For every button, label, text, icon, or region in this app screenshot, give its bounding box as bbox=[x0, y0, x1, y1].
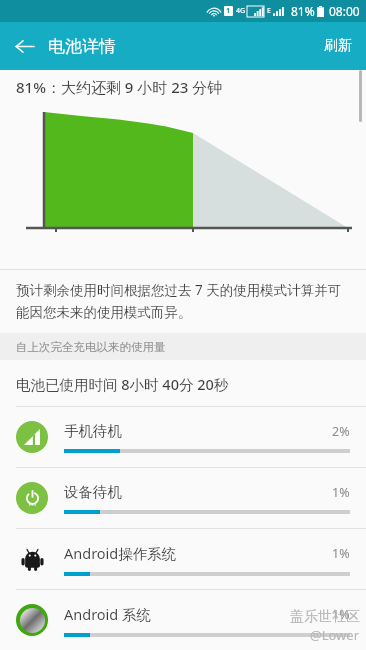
button[interactable]: 手机待机 bbox=[0, 406, 366, 467]
staticText: 刷新 bbox=[324, 37, 352, 55]
staticText: Android操作系统 bbox=[64, 543, 332, 563]
staticText: 盖乐世社区 bbox=[290, 608, 360, 626]
button[interactable]: Android 系统 bbox=[0, 589, 366, 650]
staticText: 设备待机 bbox=[64, 483, 332, 501]
staticText: E bbox=[267, 6, 271, 16]
button[interactable]: 设备待机 bbox=[0, 467, 366, 528]
staticText: 电池详情 bbox=[48, 36, 116, 57]
button[interactable]: 刷新 bbox=[310, 25, 366, 67]
staticText: 1% bbox=[332, 545, 350, 562]
staticText: 1% bbox=[332, 606, 350, 623]
staticText: 4G bbox=[236, 6, 246, 16]
staticText: 08:00 bbox=[329, 3, 360, 19]
staticText: @Lower bbox=[310, 626, 360, 644]
staticText: 预计剩余使用时间根据您过去 7 天的使用模式计算并可能因您未来的使用模式而异。 bbox=[16, 281, 352, 321]
staticText: 1% bbox=[332, 484, 350, 501]
staticText: 电池已使用时间 8小时 40分 20秒 bbox=[16, 374, 229, 394]
button[interactable]: Android操作系统 bbox=[0, 528, 366, 589]
staticText: 81%：大约还剩 9 小时 23 分钟 bbox=[16, 77, 223, 97]
staticText: 自上次完全充电以来的使用量 bbox=[16, 340, 166, 354]
staticText: Android 系统 bbox=[64, 604, 332, 624]
staticText: 1 bbox=[226, 6, 231, 16]
button[interactable]: Back bbox=[0, 22, 48, 70]
staticText: 81% bbox=[291, 3, 315, 19]
staticText: 2% bbox=[332, 423, 350, 440]
staticText: 手机待机 bbox=[64, 422, 332, 440]
